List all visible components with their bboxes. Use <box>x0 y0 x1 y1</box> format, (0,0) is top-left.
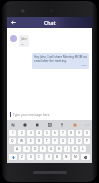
button[interactable]: Y <box>52 138 58 144</box>
button[interactable]: N <box>63 154 70 160</box>
button[interactable]: Keyboard tool 3 <box>47 122 52 127</box>
button[interactable]: C <box>36 154 43 160</box>
staticText: email after the meeting. <box>34 59 67 63</box>
button[interactable]: E <box>27 138 34 144</box>
button[interactable]: 3 <box>27 130 34 136</box>
staticText: Chat <box>44 19 56 26</box>
staticText: Type your message here <box>13 113 50 117</box>
button[interactable]: 1 <box>9 130 16 136</box>
button[interactable]: X <box>27 154 34 160</box>
staticText: 6 <box>54 131 56 135</box>
button[interactable]: R <box>36 138 42 144</box>
button[interactable]: I <box>68 138 74 144</box>
button[interactable]: Z <box>19 154 25 160</box>
staticText: Y <box>54 139 56 143</box>
button[interactable]: W <box>18 138 25 144</box>
staticText: X <box>30 155 32 159</box>
staticText: K <box>74 147 76 151</box>
button[interactable]: 2 <box>18 130 25 136</box>
staticText: Hey John, I will share Meeting MOM via <box>34 55 87 59</box>
staticText: U <box>62 139 65 143</box>
staticText: W <box>20 139 23 143</box>
staticText: L <box>82 147 84 151</box>
staticText: E <box>30 139 32 143</box>
staticText: V <box>48 155 50 159</box>
button[interactable]: F <box>40 146 46 152</box>
staticText: M <box>74 155 77 159</box>
button[interactable]: 9 <box>76 130 82 136</box>
button[interactable]: Backspace <box>81 154 90 160</box>
button[interactable]: Keyboard tool 5 <box>72 122 77 127</box>
button[interactable]: Shift <box>9 154 17 160</box>
staticText: R <box>38 139 40 143</box>
button[interactable]: U <box>60 138 66 144</box>
staticText: D <box>34 147 37 151</box>
staticText: 5 <box>46 131 48 135</box>
staticText: 4 <box>38 131 40 135</box>
button[interactable]: Keyboard tool 4 <box>59 122 64 127</box>
button[interactable]: S <box>23 146 30 152</box>
button[interactable]: P <box>84 138 90 144</box>
button[interactable]: G <box>48 146 54 152</box>
staticText: B <box>56 155 59 159</box>
staticText: Hi <box>21 42 24 45</box>
button[interactable]: Keyboard tool 1 <box>22 122 27 127</box>
button[interactable]: 7 <box>60 130 66 136</box>
button[interactable]: B <box>54 154 61 160</box>
staticText: 3 <box>30 131 32 135</box>
staticText: 10:30 <box>81 64 87 67</box>
button[interactable]: Keyboard tool 6 <box>84 122 89 127</box>
button[interactable]: H <box>56 146 62 152</box>
button[interactable]: 0 <box>84 130 90 136</box>
button[interactable]: Back <box>9 18 18 27</box>
staticText: G <box>50 147 53 151</box>
button[interactable]: 6 <box>52 130 58 136</box>
staticText: 2 <box>21 131 23 135</box>
button[interactable]: Keyboard tool 2 <box>35 122 40 127</box>
button[interactable]: K <box>72 146 78 152</box>
staticText: O <box>78 139 81 143</box>
staticText: John <box>21 37 27 41</box>
button[interactable]: T <box>44 138 50 144</box>
button[interactable]: L <box>80 146 86 152</box>
button[interactable]: Keyboard tool 0 <box>10 122 15 127</box>
button[interactable]: V <box>45 154 52 160</box>
staticText: 0 <box>86 131 88 135</box>
staticText: C <box>38 155 41 159</box>
staticText: 8 <box>70 131 72 135</box>
staticText: P <box>86 139 88 143</box>
staticText: S <box>26 147 28 151</box>
staticText: A <box>16 147 19 151</box>
staticText: Z <box>21 155 23 159</box>
staticText: 7 <box>62 131 64 135</box>
staticText: I <box>70 139 72 143</box>
button[interactable]: Q <box>9 138 16 144</box>
staticText: J <box>67 147 68 151</box>
staticText: 1 <box>12 131 14 135</box>
button[interactable]: M <box>72 154 79 160</box>
staticText: H <box>58 147 61 151</box>
button[interactable]: 4 <box>36 130 42 136</box>
staticText: F <box>42 147 44 151</box>
button[interactable]: D <box>32 146 38 152</box>
button[interactable]: 8 <box>68 130 74 136</box>
staticText: 9 <box>78 131 80 135</box>
staticText: N <box>65 155 68 159</box>
button[interactable]: Type your message here <box>7 109 92 120</box>
button[interactable]: J <box>64 146 70 152</box>
button[interactable]: A <box>14 146 21 152</box>
staticText: Q <box>11 139 14 143</box>
staticText: T <box>46 139 48 143</box>
button[interactable]: O <box>76 138 82 144</box>
button[interactable]: 5 <box>44 130 50 136</box>
